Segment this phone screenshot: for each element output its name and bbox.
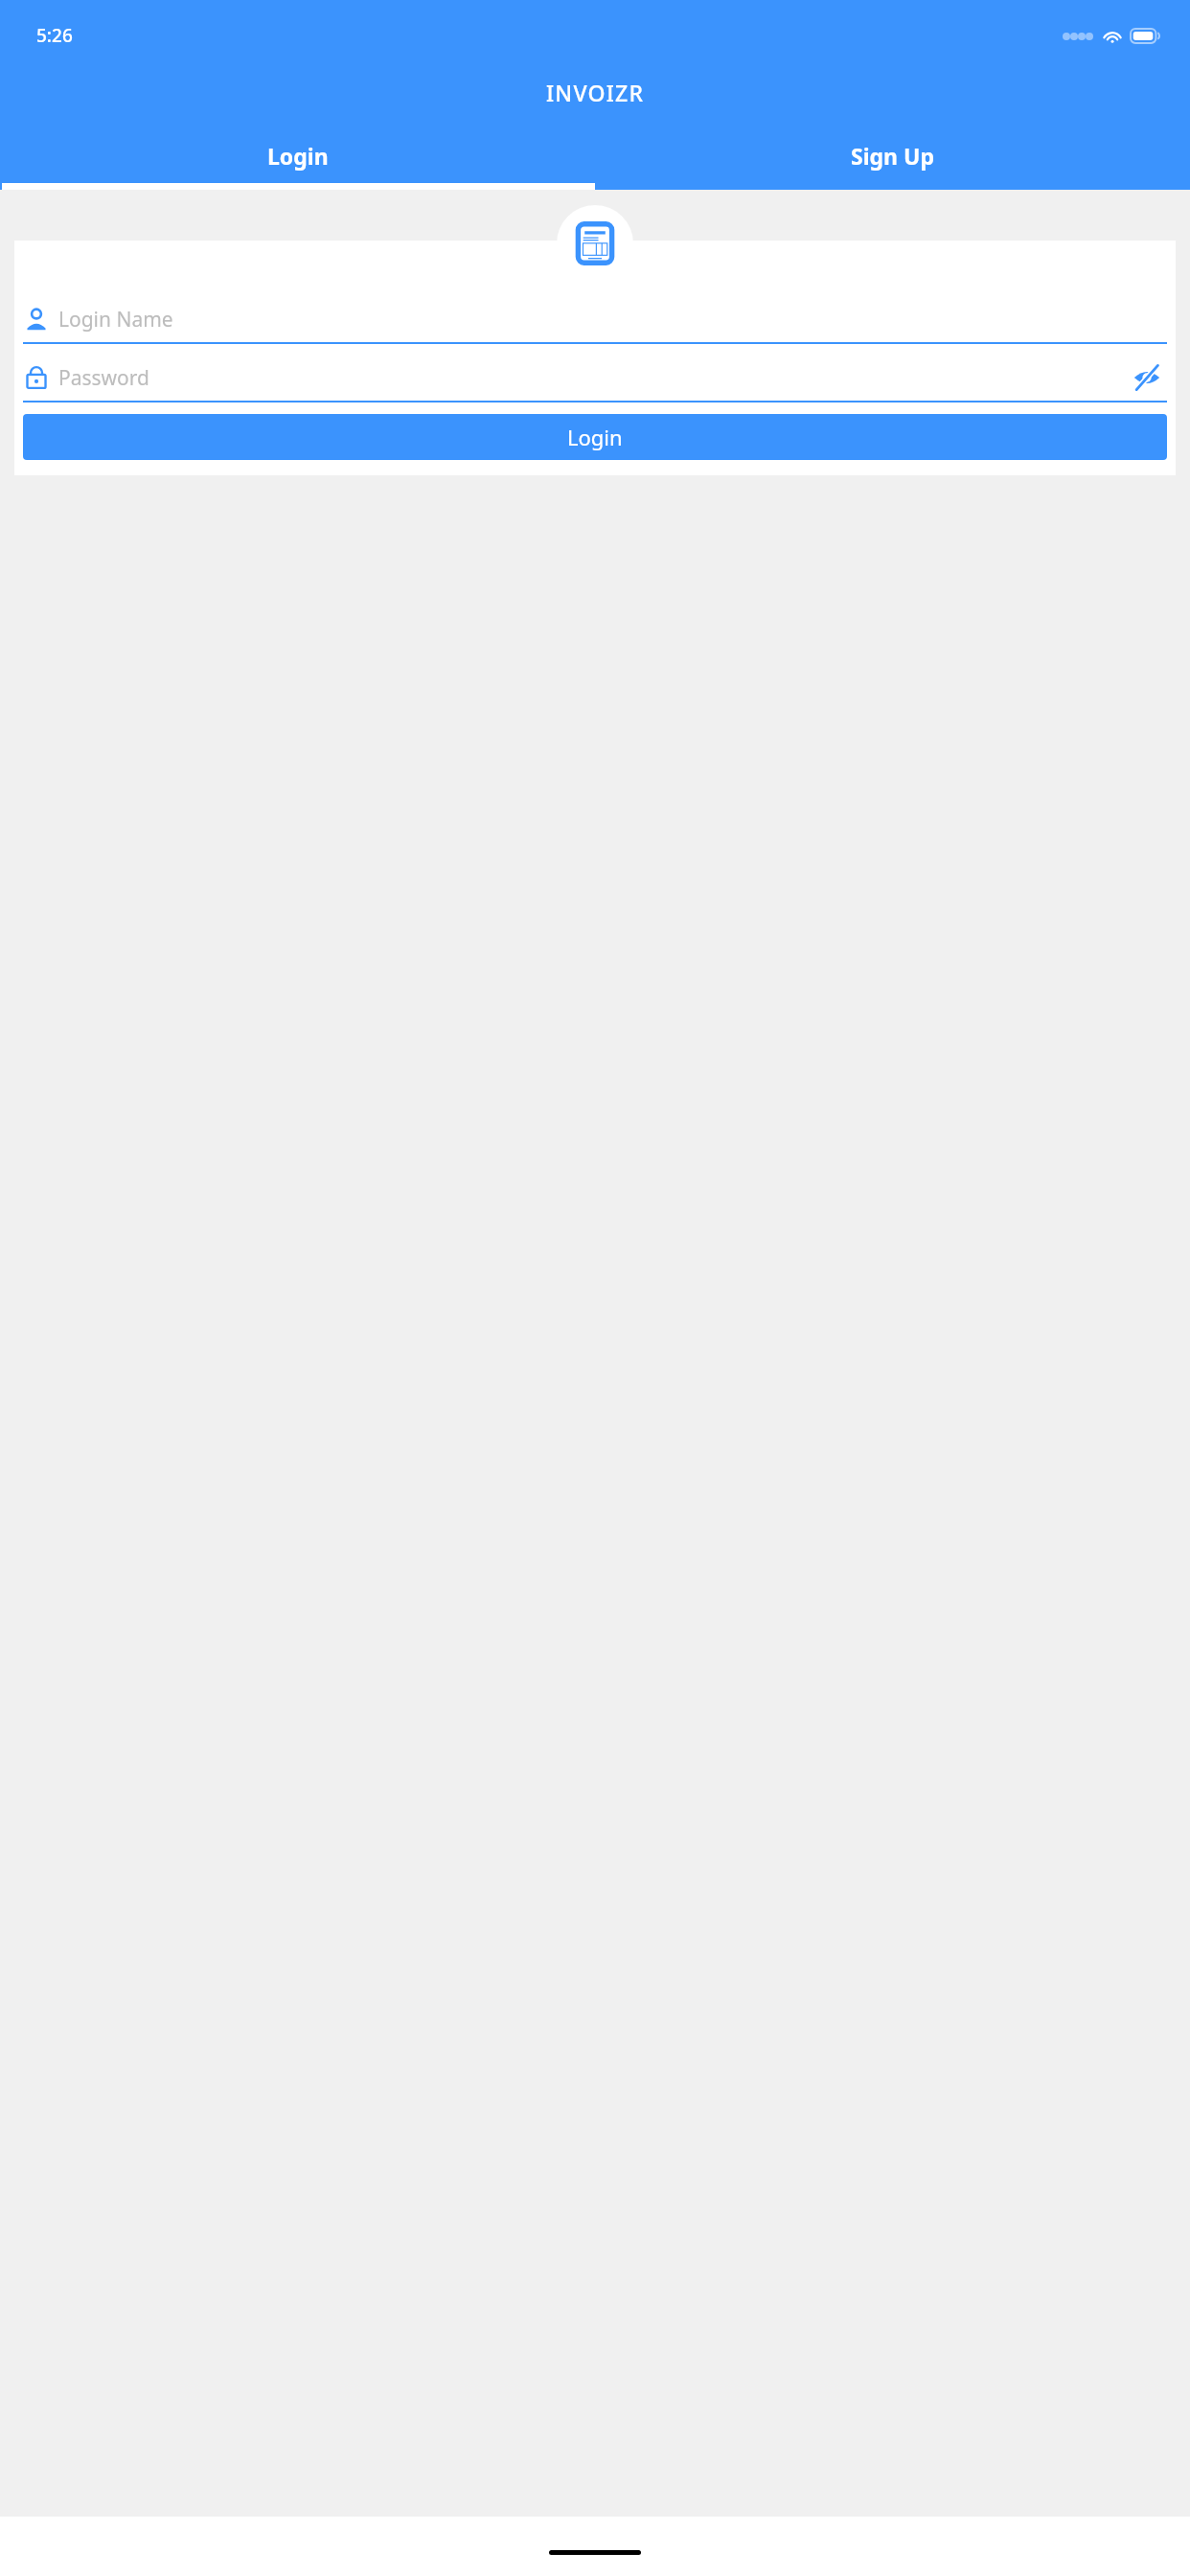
button[interactable]: Login: [23, 414, 1167, 460]
staticText: 5:26: [36, 23, 73, 48]
button[interactable]: Login: [0, 130, 595, 190]
staticText: INVOIZR: [546, 78, 645, 107]
staticText: Sign Up: [851, 141, 934, 171]
staticText: Login: [567, 423, 623, 451]
button[interactable]: Show password: [1131, 361, 1163, 394]
staticText: Login: [267, 141, 329, 171]
button[interactable]: Sign Up: [595, 130, 1190, 190]
staticText: Password: [58, 364, 149, 392]
button[interactable]: Password: [23, 355, 1169, 401]
button[interactable]: Login Name: [23, 296, 1169, 342]
staticText: Login Name: [58, 306, 173, 333]
